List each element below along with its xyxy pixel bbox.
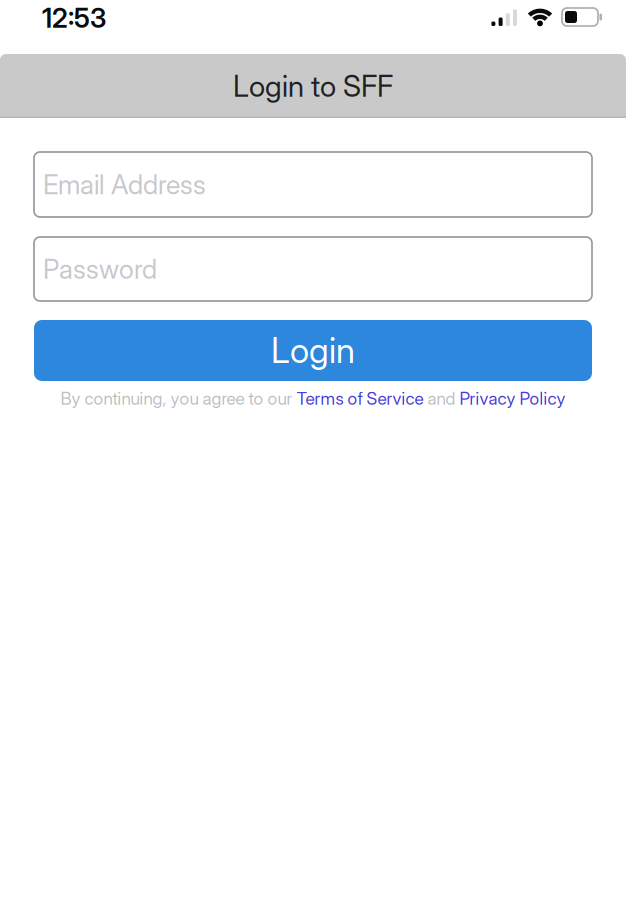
staticText: Login (271, 329, 355, 371)
staticText: By continuing, you agree to our (60, 388, 292, 409)
staticText: Password (43, 253, 157, 285)
button[interactable]: Email Address (34, 152, 592, 217)
staticText: Email Address (43, 168, 206, 201)
staticText: Login to SFF (233, 68, 393, 104)
staticText: and (427, 388, 455, 409)
button[interactable]: Privacy Policy (459, 388, 565, 409)
button[interactable]: Login (34, 320, 592, 381)
button[interactable]: Password (34, 237, 592, 301)
button[interactable]: Terms of Service (296, 388, 423, 409)
staticText: Terms of Service (296, 388, 423, 409)
staticText: Privacy Policy (459, 388, 565, 409)
staticText: 12:53 (42, 2, 106, 34)
